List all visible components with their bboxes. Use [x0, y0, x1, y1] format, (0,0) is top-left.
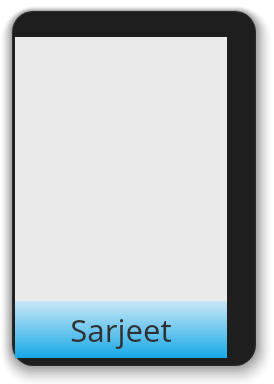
button[interactable]: Sarjeet — [15, 301, 227, 358]
staticText: Sarjeet — [70, 309, 172, 351]
